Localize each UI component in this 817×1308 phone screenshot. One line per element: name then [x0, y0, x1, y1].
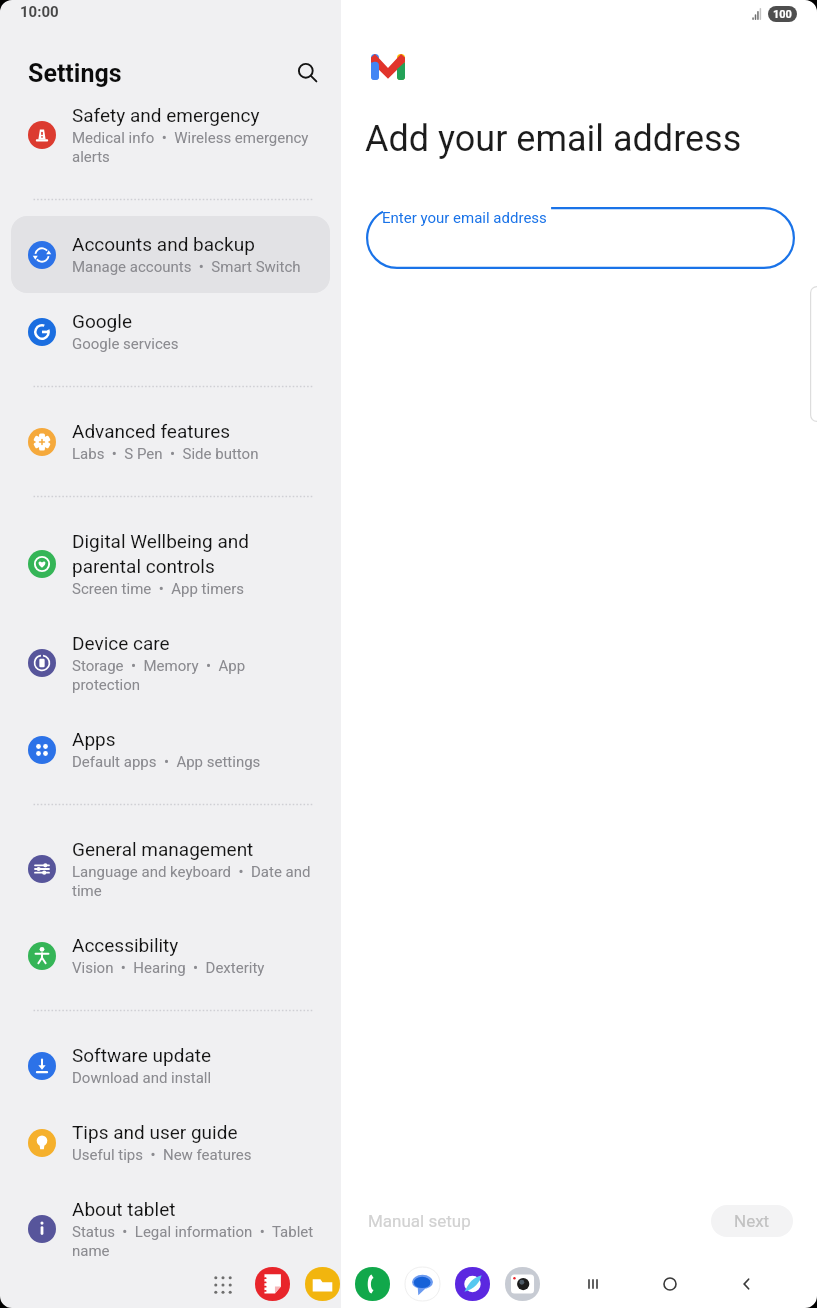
staticText: Next	[734, 1211, 770, 1231]
staticText: Screen time • App timers	[72, 580, 245, 598]
button[interactable]: All apps	[204, 1266, 241, 1303]
staticText: Google	[72, 310, 132, 332]
button[interactable]: Accounts and backup	[11, 216, 330, 293]
staticText: Apps	[72, 728, 116, 750]
button[interactable]: About tablet	[11, 1181, 330, 1277]
button[interactable]: phone	[354, 1266, 390, 1302]
button[interactable]: General management	[11, 821, 330, 917]
staticText: Advanced features	[72, 420, 231, 442]
staticText: Google services	[72, 335, 179, 353]
button[interactable]: files	[304, 1266, 340, 1302]
staticText: Manage accounts • Smart Switch	[72, 258, 301, 276]
staticText: Download and install	[72, 1069, 212, 1087]
button[interactable]: Back	[718, 1260, 776, 1308]
button[interactable]: Search	[290, 59, 326, 87]
button[interactable]: Advanced features	[11, 403, 330, 480]
staticText: Labs • S Pen • Side button	[72, 445, 259, 463]
staticText: Safety and emergency	[72, 104, 260, 126]
button[interactable]: Home	[641, 1260, 699, 1308]
staticText: Status • Legal information • Tablet name	[72, 1223, 315, 1260]
staticText: Useful tips • New features	[72, 1146, 252, 1164]
button[interactable]: Recents	[564, 1260, 622, 1308]
staticText: Manual setup	[368, 1211, 471, 1231]
staticText: Default apps • App settings	[72, 753, 261, 771]
staticText: Medical info • Wireless emergency alerts	[72, 129, 315, 166]
staticText: Device care	[72, 632, 170, 654]
staticText: Storage • Memory • App protection	[72, 657, 315, 694]
button[interactable]: Digital Wellbeing and parental controls	[11, 513, 330, 615]
button[interactable]: Device care	[11, 615, 330, 711]
staticText: 100	[773, 8, 792, 21]
staticText: General management	[72, 838, 254, 860]
button[interactable]: Google	[11, 293, 330, 370]
button[interactable]: Accessibility	[11, 917, 330, 994]
staticText: Tips and user guide	[72, 1121, 238, 1143]
button[interactable]: Apps	[11, 711, 330, 788]
staticText: 10:00	[20, 3, 59, 21]
button[interactable]: Manual setup	[361, 1203, 478, 1239]
button[interactable]: Safety and emergency	[11, 87, 330, 183]
button[interactable]: camera	[504, 1266, 540, 1302]
button[interactable]: messages	[404, 1266, 440, 1302]
staticText: Enter your email address	[382, 209, 547, 227]
staticText: Language and keyboard • Date and time	[72, 863, 315, 900]
staticText: Settings	[28, 59, 122, 87]
staticText: Accounts and backup	[72, 233, 255, 255]
staticText: Vision • Hearing • Dexterity	[72, 959, 265, 977]
staticText: About tablet	[72, 1198, 176, 1220]
button[interactable]: notes	[254, 1266, 290, 1302]
button[interactable]: internet	[454, 1266, 490, 1302]
staticText: Accessibility	[72, 934, 179, 956]
staticText: Add your email address	[365, 118, 742, 160]
button[interactable]: Software update	[11, 1027, 330, 1104]
staticText: Software update	[72, 1044, 212, 1066]
button[interactable]: Tips and user guide	[11, 1104, 330, 1181]
button[interactable]: Next	[711, 1205, 793, 1237]
staticText: Digital Wellbeing and parental controls	[72, 530, 315, 577]
